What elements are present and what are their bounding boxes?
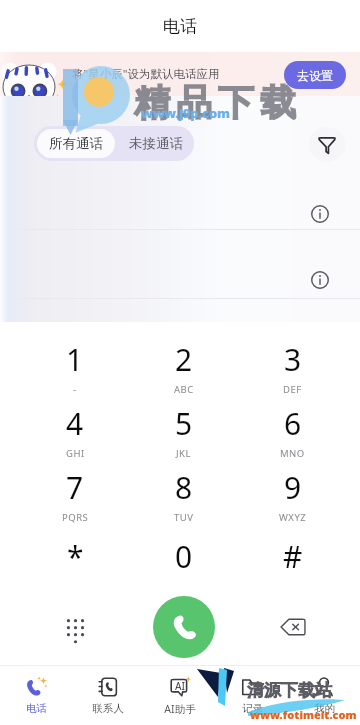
staticText: 1 <box>66 339 84 380</box>
button[interactable]: Show keypad <box>51 603 99 651</box>
staticText: # <box>283 536 303 577</box>
staticText: - <box>73 383 77 396</box>
staticText: 联系人 <box>92 702 124 715</box>
staticText: 3 <box>284 339 302 380</box>
staticText: 将"星小辰"设为默认电话应用 <box>72 66 220 82</box>
staticText: AI <box>175 679 186 693</box>
staticText: WXYZ <box>279 511 307 524</box>
staticText: 精品下载 <box>131 80 299 125</box>
staticText: 7 <box>66 467 84 508</box>
staticText: TUV <box>174 511 194 524</box>
staticText: 电话 <box>26 702 47 715</box>
button[interactable]: 电话 <box>0 666 72 725</box>
button[interactable]: Call details <box>306 266 334 294</box>
staticText: www.j9p.com <box>141 104 230 122</box>
button[interactable]: 我的 <box>288 666 360 725</box>
staticText: 记录 <box>242 702 263 715</box>
button[interactable]: 所有通话 <box>37 129 115 158</box>
button[interactable]: 9 <box>238 463 347 527</box>
staticText: JKL <box>176 447 191 460</box>
button[interactable]: AI <box>144 666 216 725</box>
staticText: 2 <box>175 339 193 380</box>
staticText: 未接通话 <box>129 135 183 152</box>
staticText: GHI <box>66 447 85 460</box>
button[interactable]: Call details <box>0 162 360 230</box>
button[interactable]: * <box>21 527 129 591</box>
button[interactable]: 0 <box>129 527 238 591</box>
staticText: 去设置 <box>297 68 333 83</box>
button[interactable]: 联系人 <box>72 666 144 725</box>
button[interactable]: 4 <box>21 399 129 463</box>
button[interactable]: # <box>238 527 347 591</box>
button[interactable]: 7 <box>21 463 129 527</box>
button[interactable]: 6 <box>238 399 347 463</box>
staticText: 9 <box>284 467 302 508</box>
button[interactable]: 未接通话 <box>118 126 194 161</box>
button[interactable]: Filter calls <box>309 127 345 162</box>
staticText: 5 <box>175 403 193 444</box>
button[interactable]: 8 <box>129 463 238 527</box>
button[interactable]: Backspace <box>269 603 317 651</box>
button[interactable]: Call <box>153 596 215 658</box>
staticText: 清源下载站 <box>247 680 332 701</box>
staticText: * <box>67 536 84 577</box>
staticText: ABC <box>174 383 194 396</box>
button[interactable]: 去设置 <box>284 61 346 89</box>
staticText: 我的 <box>314 702 335 715</box>
staticText: AI助手 <box>164 702 196 716</box>
button[interactable]: 3 <box>238 335 347 399</box>
button[interactable]: 记录 <box>216 666 288 725</box>
staticText: 0 <box>175 536 193 577</box>
button[interactable]: 1 <box>21 335 129 399</box>
staticText: 8 <box>175 467 193 508</box>
staticText: 4 <box>66 403 84 444</box>
staticText: 所有通话 <box>49 135 103 152</box>
staticText: PQRS <box>62 511 89 524</box>
staticText: 6 <box>284 403 302 444</box>
button[interactable]: Call details <box>0 230 360 299</box>
button[interactable]: Call details <box>306 200 334 228</box>
staticText: DEF <box>283 383 302 396</box>
staticText: www.fotimeit.com <box>250 707 357 722</box>
button[interactable]: 5 <box>129 399 238 463</box>
button[interactable]: 2 <box>129 335 238 399</box>
staticText: 电话 <box>163 16 197 37</box>
staticText: MNO <box>280 447 305 460</box>
